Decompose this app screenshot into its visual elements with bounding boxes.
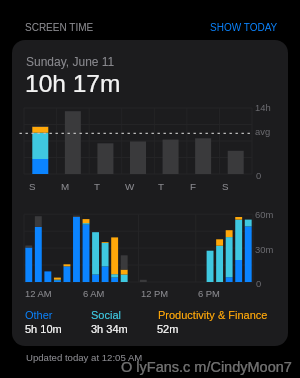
staticText: 0 bbox=[256, 170, 262, 181]
staticText: T bbox=[94, 181, 100, 192]
staticText: 6 PM bbox=[198, 288, 220, 299]
staticText: O lyFans.c m/CindyMoon7 bbox=[121, 359, 292, 375]
staticText: F bbox=[190, 181, 196, 192]
staticText: 0 bbox=[256, 278, 262, 289]
staticText: 12 AM bbox=[25, 288, 52, 299]
staticText: Updated today at 12:05 AM bbox=[26, 352, 143, 363]
staticText: M bbox=[61, 181, 70, 192]
staticText: 14h bbox=[255, 102, 271, 113]
staticText: SHOW TODAY bbox=[210, 22, 278, 33]
staticText: SCREEN TIME bbox=[25, 22, 94, 33]
staticText: 12 PM bbox=[141, 288, 169, 299]
button[interactable]: Sunday, June 11 bbox=[12, 40, 288, 346]
staticText: 3h 34m bbox=[91, 323, 128, 335]
staticText: W bbox=[125, 181, 135, 192]
staticText: 5h 10m bbox=[25, 323, 62, 335]
staticText: 30m bbox=[255, 244, 274, 255]
staticText: Social bbox=[91, 309, 121, 321]
button[interactable]: SCREEN TIME bbox=[18, 16, 100, 38]
staticText: avg bbox=[255, 126, 271, 137]
staticText: S bbox=[222, 181, 229, 192]
staticText: Other bbox=[25, 309, 53, 321]
button[interactable]: SHOW TODAY bbox=[203, 16, 285, 38]
staticText: 6 AM bbox=[83, 288, 105, 299]
staticText: Productivity & Finance bbox=[158, 309, 268, 321]
staticText: 10h 17m bbox=[25, 70, 121, 97]
staticText: T bbox=[158, 181, 164, 192]
staticText: S bbox=[29, 181, 36, 192]
staticText: Sunday, June 11 bbox=[26, 55, 115, 68]
staticText: 52m bbox=[157, 323, 179, 335]
staticText: 60m bbox=[255, 209, 274, 220]
